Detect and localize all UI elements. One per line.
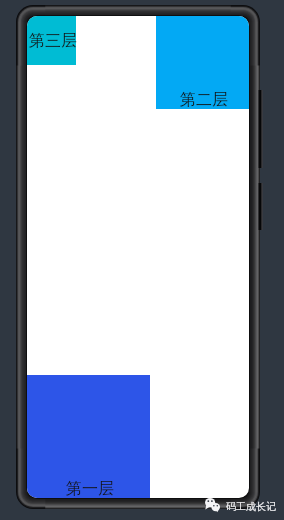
button[interactable]: 第二层 (156, 16, 249, 109)
staticText: 码工成长记 (226, 500, 276, 513)
button[interactable]: Power (258, 183, 263, 230)
button[interactable]: 第三层 (27, 16, 76, 65)
button[interactable]: 第一层 (27, 375, 150, 498)
button[interactable]: Volume (258, 90, 263, 168)
staticText: 第一层 (66, 479, 114, 498)
staticText: 第三层 (29, 31, 77, 51)
staticText: 第二层 (180, 90, 228, 110)
other: WeChat 码工成长记 (205, 498, 276, 512)
